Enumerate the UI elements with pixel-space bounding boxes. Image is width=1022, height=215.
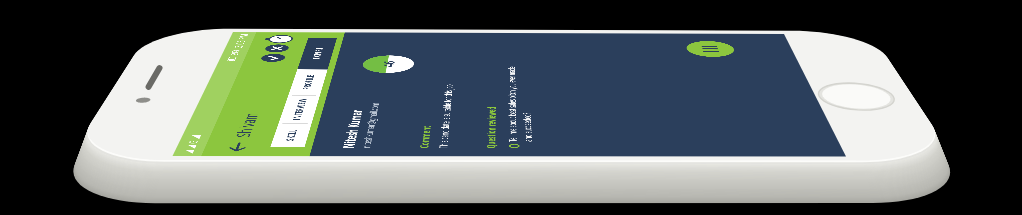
button[interactable]: Interview app screen shown on a phone (0, 0, 1022, 215)
